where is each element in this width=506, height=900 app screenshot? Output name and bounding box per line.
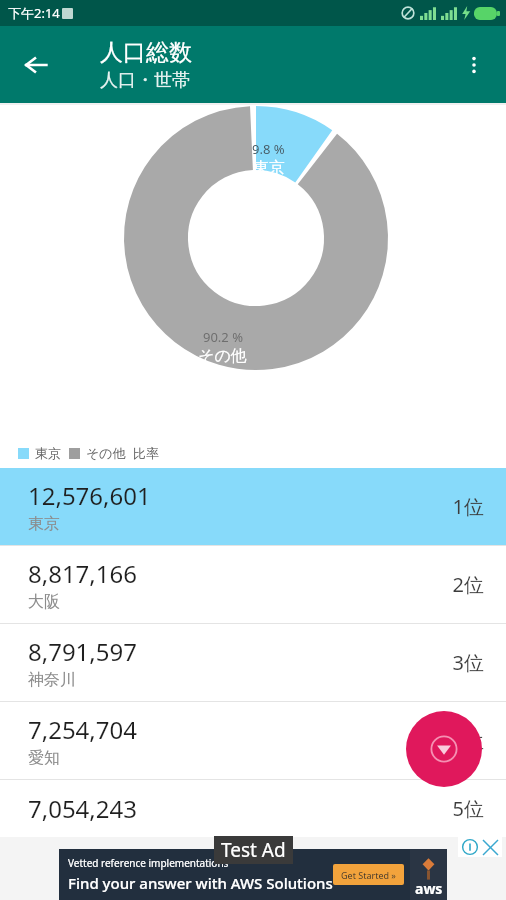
button[interactable]: Back xyxy=(10,39,62,91)
staticText: その他 xyxy=(198,346,247,366)
staticText: 1位 xyxy=(452,493,484,520)
button[interactable]: Close ad xyxy=(480,837,500,857)
button[interactable]: Get Started » xyxy=(333,864,404,885)
staticText: 東京 xyxy=(28,514,60,534)
button[interactable]: 7,054,243 xyxy=(0,780,506,837)
button[interactable]: More options xyxy=(450,41,498,89)
staticText: 大阪 xyxy=(28,592,60,612)
staticText: Find your answer with AWS Solutions xyxy=(68,873,333,893)
staticText: 9.8 % xyxy=(252,140,285,158)
button[interactable]: 7,254,704 xyxy=(0,702,506,779)
staticText: Test Ad xyxy=(221,837,286,863)
staticText: 東京 xyxy=(35,445,61,461)
staticText: 東京 xyxy=(253,158,285,178)
staticText: 神奈川 xyxy=(28,670,76,690)
staticText: 人口・世帯 xyxy=(100,69,190,92)
staticText: 8,791,597 xyxy=(28,635,137,668)
staticText: 愛知 xyxy=(28,748,60,768)
staticText: 3位 xyxy=(452,649,484,676)
staticText: 5位 xyxy=(452,795,484,822)
staticText: 7,254,704 xyxy=(28,713,137,746)
staticText: 12,576,601 xyxy=(28,479,151,512)
staticText: aws xyxy=(415,879,443,898)
staticText: 人口総数 xyxy=(100,38,192,67)
button[interactable]: 8,791,597 xyxy=(0,624,506,701)
staticText: 2位 xyxy=(452,571,484,598)
staticText: 90.2 % xyxy=(203,328,243,346)
staticText: 比率 xyxy=(133,445,159,461)
staticText: 8,817,166 xyxy=(28,557,137,590)
button[interactable]: Ad info xyxy=(460,837,480,857)
staticText: Get Started » xyxy=(341,869,396,881)
staticText: Vetted reference implementations xyxy=(68,856,229,870)
button[interactable]: 8,817,166 xyxy=(0,546,506,623)
button[interactable]: 12,576,601 xyxy=(0,468,506,545)
button[interactable]: Scroll down xyxy=(406,711,482,787)
staticText: その他 xyxy=(86,445,126,461)
staticText: 下午2:14 xyxy=(8,4,60,22)
staticText: 7,054,243 xyxy=(28,792,137,825)
staticText: 4位 xyxy=(452,727,484,754)
